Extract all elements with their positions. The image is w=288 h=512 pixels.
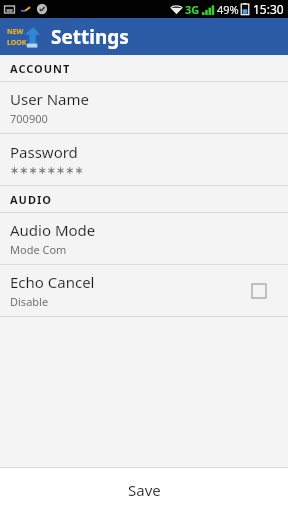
button[interactable]: Echo Cancel checkbox — [246, 278, 272, 304]
button[interactable]: User Name — [0, 82, 288, 133]
staticText: 15:30 — [253, 1, 284, 17]
staticText: Password — [10, 142, 78, 162]
staticText: NEW — [7, 27, 24, 37]
staticText: Echo Cancel — [10, 272, 95, 292]
staticText: Disable — [10, 294, 49, 309]
staticText: 3G — [185, 2, 200, 17]
staticText: Mode Com — [10, 242, 67, 257]
staticText: Settings — [51, 24, 129, 50]
staticText: ACCOUNT — [10, 61, 71, 76]
button[interactable]: Audio Mode — [0, 213, 288, 264]
staticText: Audio Mode — [10, 220, 96, 240]
staticText: ∗∗∗∗∗∗∗∗ — [10, 164, 84, 177]
staticText: Save — [128, 480, 161, 500]
button[interactable]: Save — [0, 468, 288, 512]
staticText: 49% — [217, 2, 239, 17]
button[interactable]: Echo Cancel — [0, 265, 288, 316]
staticText: 700900 — [10, 111, 48, 126]
button[interactable]: Password — [0, 134, 288, 185]
staticText: AUDIO — [10, 192, 52, 207]
staticText: LOOK — [7, 38, 27, 48]
staticText: User Name — [10, 89, 90, 109]
